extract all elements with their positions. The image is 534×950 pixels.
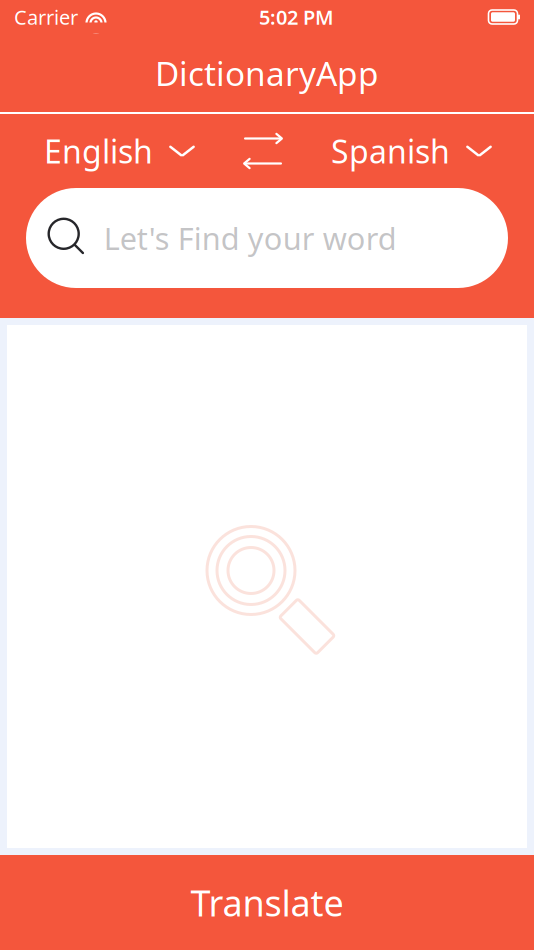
staticText: Carrier [14,4,78,30]
button[interactable]: Translate [0,855,534,950]
staticText: Translate [190,879,343,926]
button[interactable]: Swap languages [227,128,299,174]
button[interactable]: English [44,124,195,178]
staticText: 5:02 PM [259,4,334,30]
button[interactable]: Search for a word [26,188,508,288]
staticText: DictionaryApp [155,51,379,95]
staticText: English [44,130,153,172]
staticText: Spanish [331,130,450,172]
button[interactable]: Spanish [331,124,492,178]
staticText: Let's Find your word [104,218,397,258]
